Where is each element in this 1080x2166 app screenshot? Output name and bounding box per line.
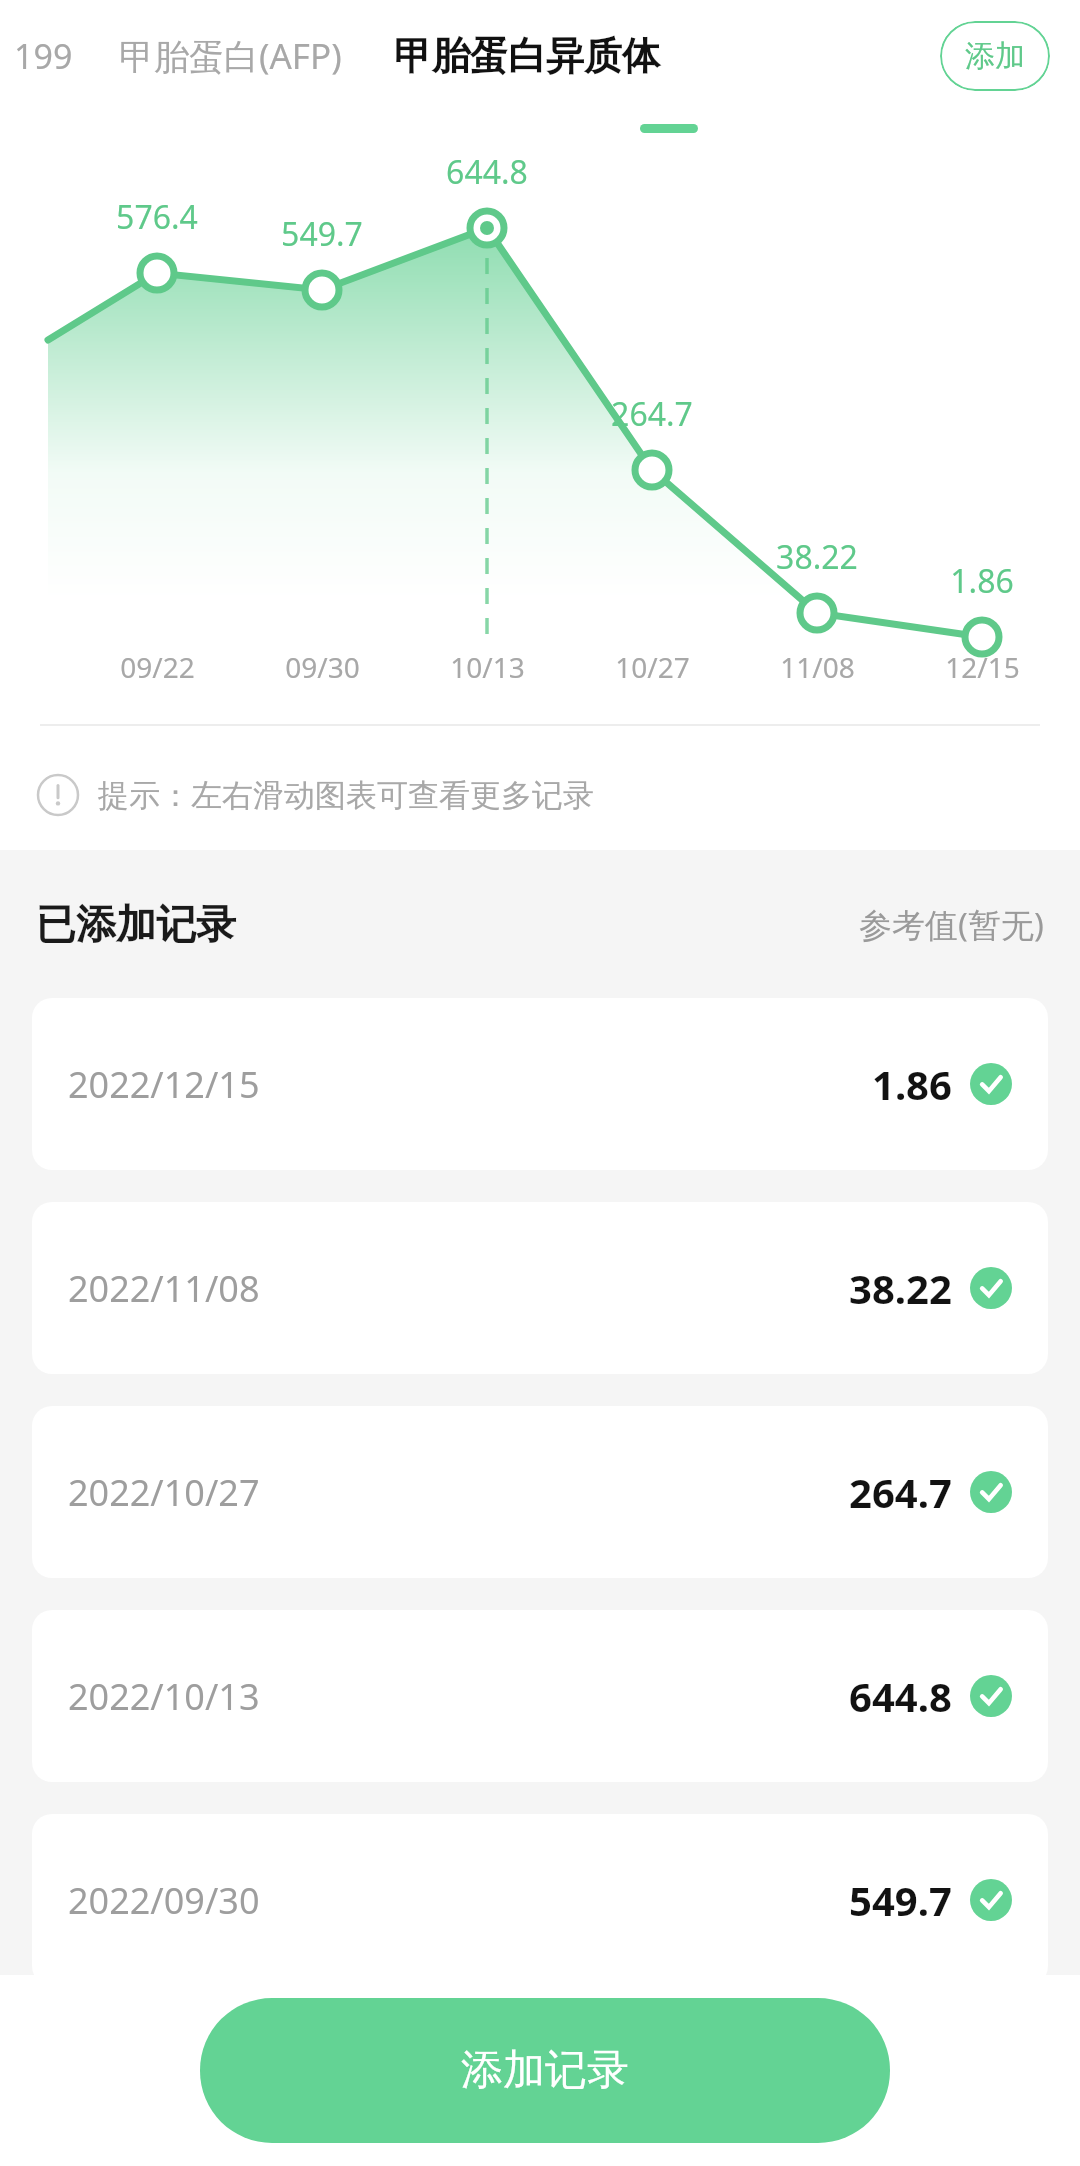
staticText: 11/08 [780, 648, 855, 686]
button[interactable]: 甲胎蛋白异质体 [388, 18, 666, 94]
staticText: 264.7 [849, 1465, 952, 1519]
staticText: 10/13 [450, 648, 525, 686]
button[interactable]: 甲胎蛋白(AFP) [113, 14, 348, 98]
staticText: 添加记录 [461, 2044, 629, 2097]
button[interactable]: 2022/10/27 [32, 1406, 1048, 1578]
staticText: 549.7 [849, 1873, 952, 1927]
staticText: 199 [14, 33, 73, 79]
staticText: 添加 [965, 37, 1025, 75]
button[interactable]: 2022/10/13 [32, 1610, 1048, 1782]
staticText: 参考值(暂无) [859, 902, 1044, 947]
staticText: 甲胎蛋白异质体 [394, 32, 660, 80]
staticText: 1.86 [950, 559, 1014, 603]
staticText: 264.7 [611, 392, 693, 436]
button[interactable]: 2022/11/08 [32, 1202, 1048, 1374]
staticText: 甲胎蛋白(AFP) [119, 32, 342, 80]
staticText: 2022/09/30 [68, 1876, 260, 1925]
staticText: 12/15 [945, 648, 1020, 686]
staticText: 2022/10/27 [68, 1468, 260, 1517]
staticText: 2022/11/08 [68, 1264, 260, 1313]
button[interactable]: 添加 [940, 21, 1050, 91]
button[interactable]: 2022/12/15 [32, 998, 1048, 1170]
staticText: 提示：左右滑动图表可查看更多记录 [98, 776, 594, 815]
staticText: 644.8 [446, 150, 528, 194]
staticText: 已添加记录 [36, 899, 236, 949]
staticText: 10/27 [615, 648, 690, 686]
button[interactable]: 199 [10, 15, 77, 97]
staticText: 2022/10/13 [68, 1672, 260, 1721]
staticText: 549.7 [281, 212, 363, 256]
button[interactable]: 添加记录 [200, 1998, 890, 2143]
staticText: 09/22 [120, 648, 195, 686]
staticText: 644.8 [849, 1669, 952, 1723]
staticText: 38.22 [849, 1261, 952, 1315]
staticText: 09/30 [285, 648, 360, 686]
staticText: 2022/12/15 [68, 1060, 260, 1109]
staticText: 1.86 [872, 1057, 952, 1111]
button[interactable]: 2022/09/30 [32, 1814, 1048, 1986]
staticText: 38.22 [776, 535, 858, 579]
staticText: 576.4 [116, 195, 198, 239]
